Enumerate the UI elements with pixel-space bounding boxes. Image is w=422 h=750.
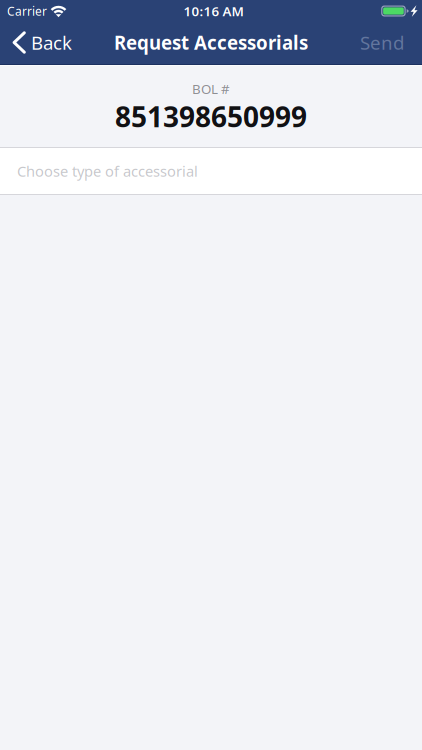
staticText: 10:16 AM [183,2,243,20]
staticText: 851398650999 [115,98,307,135]
button[interactable]: Send [346,20,422,64]
staticText: Choose type of accessorial [17,161,198,181]
staticText: BOL # [192,80,230,98]
button[interactable]: Back [0,20,82,64]
staticText: Send [360,30,404,55]
staticText: Back [31,30,72,55]
staticText: Request Accessorials [114,30,308,55]
staticText: Carrier [7,3,47,19]
button[interactable]: Choose type of accessorial [0,148,422,194]
